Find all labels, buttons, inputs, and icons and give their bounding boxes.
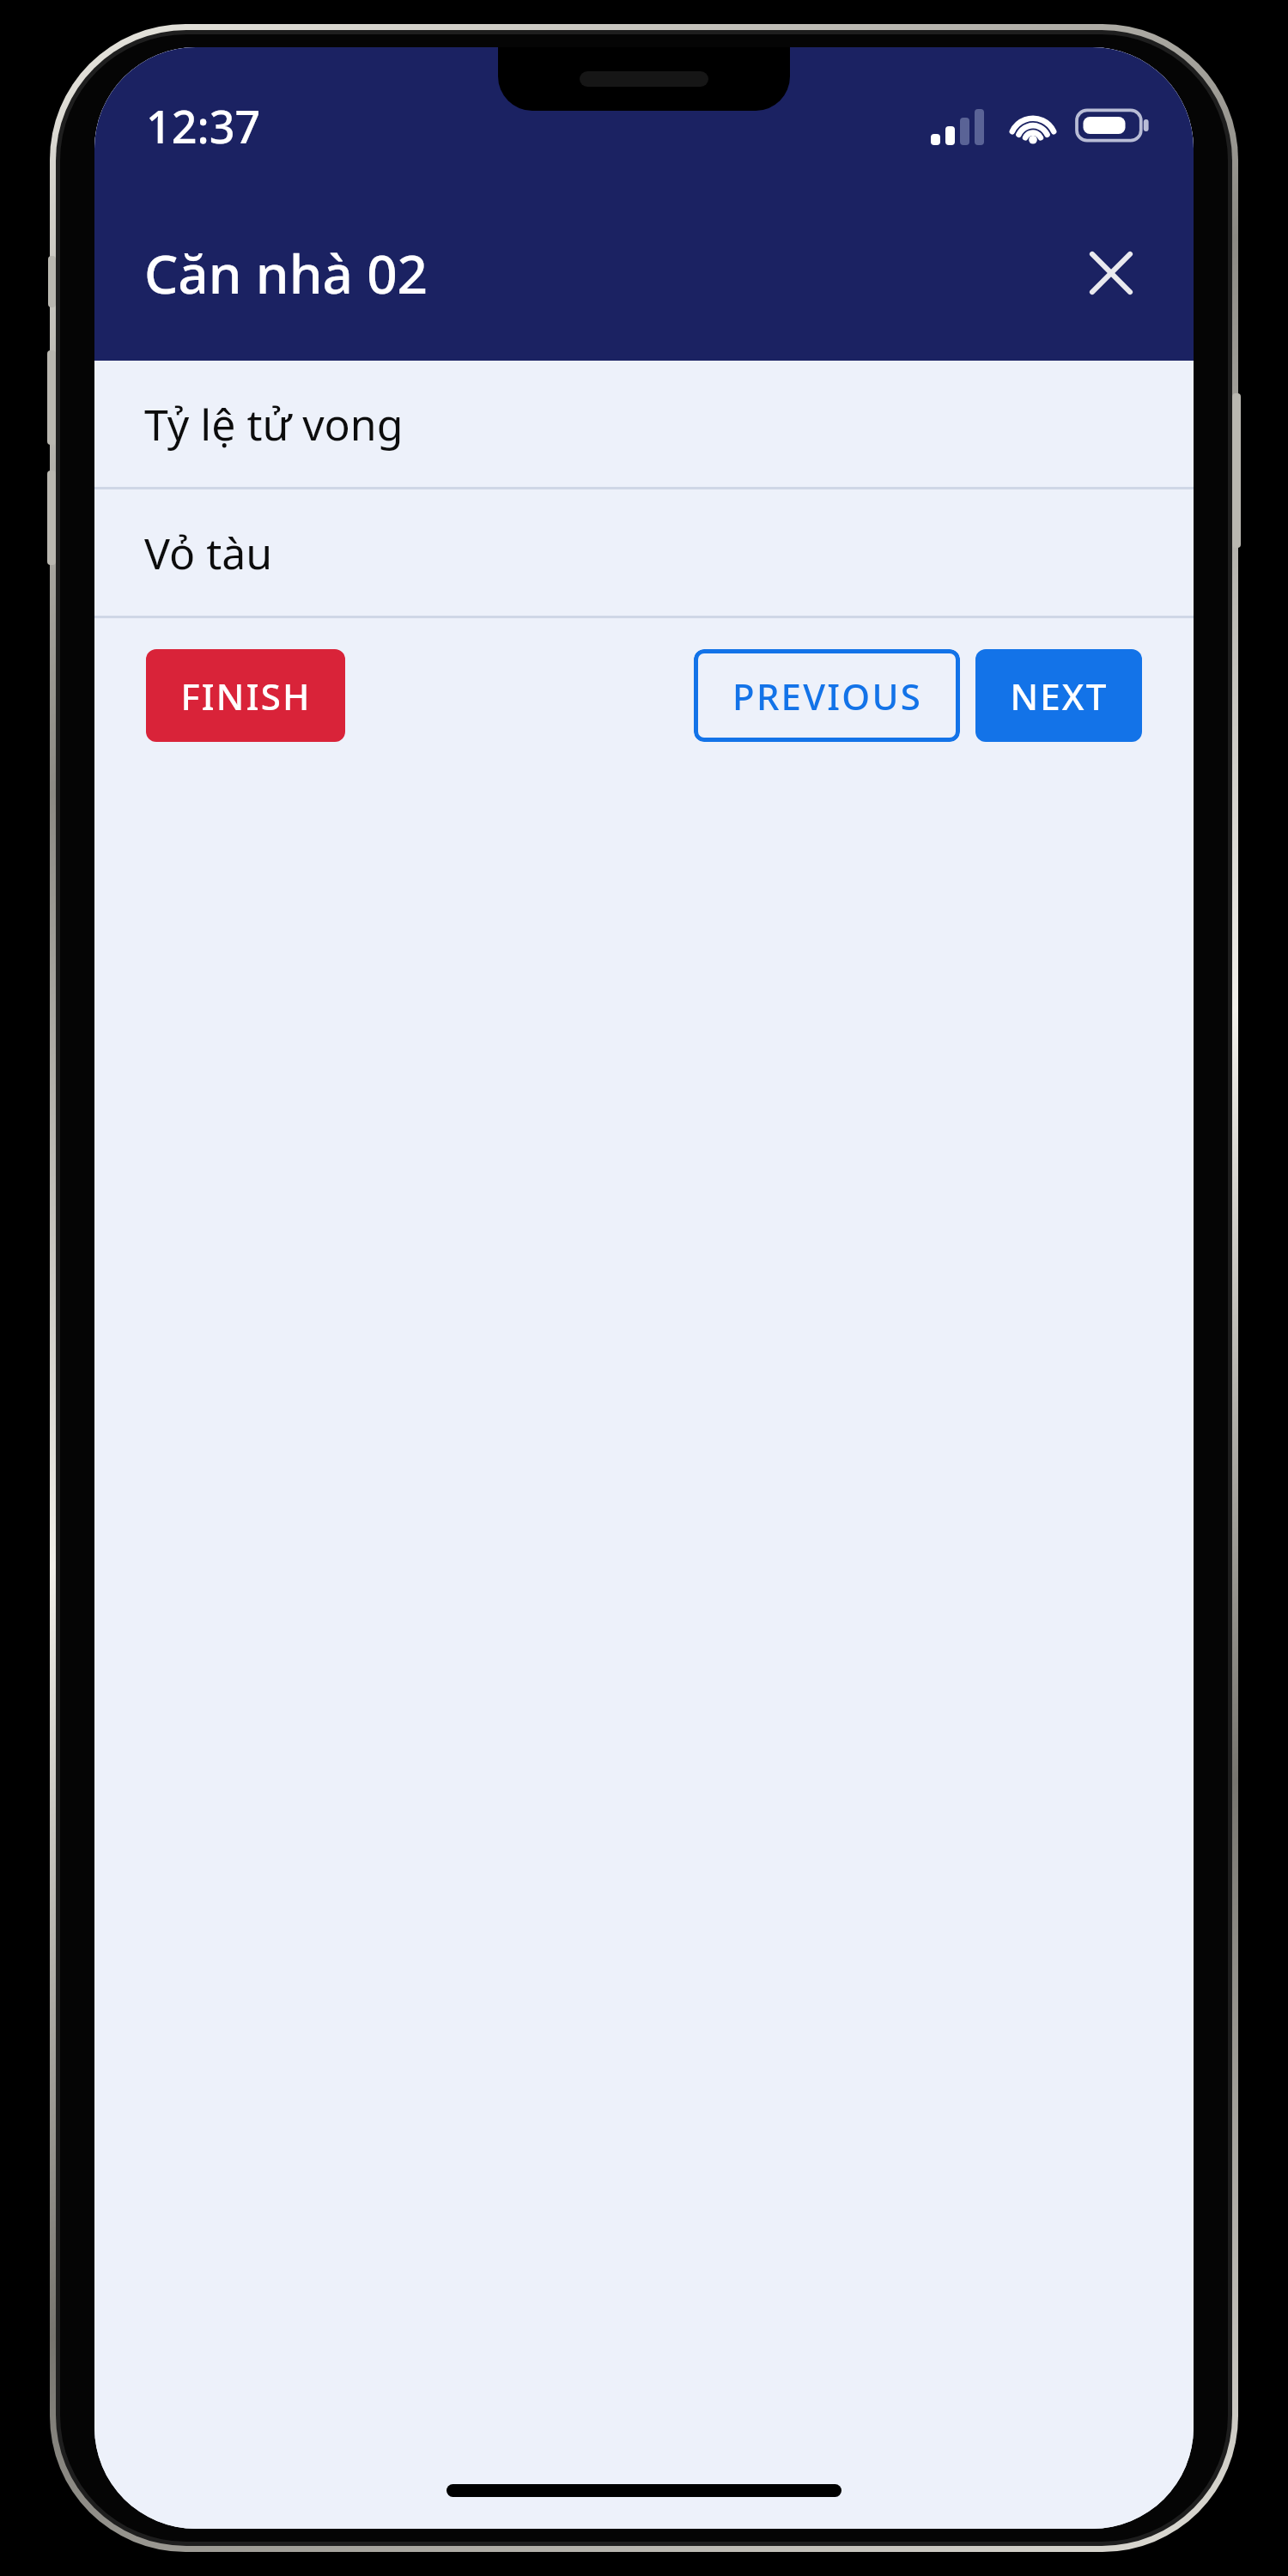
staticText: Vỏ tàu bbox=[144, 524, 273, 582]
button[interactable]: Close bbox=[1065, 227, 1157, 319]
button[interactable]: PREVIOUS bbox=[694, 649, 960, 742]
button[interactable]: Vỏ tàu bbox=[94, 489, 1194, 616]
staticText: Tỷ lệ tử vong bbox=[144, 395, 404, 453]
staticText: 12:37 bbox=[146, 95, 261, 156]
button[interactable]: Tỷ lệ tử vong bbox=[94, 361, 1194, 487]
staticText: Căn nhà 02 bbox=[144, 237, 428, 309]
button[interactable]: NEXT bbox=[975, 649, 1142, 742]
staticText: PREVIOUS bbox=[732, 671, 922, 720]
button[interactable]: FINISH bbox=[146, 649, 345, 742]
staticText: FINISH bbox=[180, 671, 312, 720]
staticText: NEXT bbox=[1010, 671, 1109, 720]
